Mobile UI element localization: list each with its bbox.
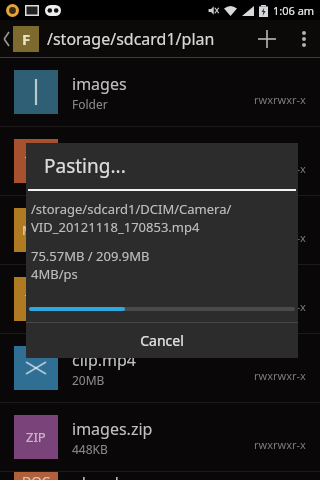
button[interactable]: Add xyxy=(246,20,288,57)
staticText: ZIP xyxy=(26,428,46,446)
staticText: 75.57MB / 209.9MB xyxy=(31,247,150,265)
button[interactable]: images xyxy=(0,58,320,126)
staticText: F xyxy=(22,29,31,49)
staticText: rwxrwxr-x xyxy=(254,92,306,107)
staticText: rwxrwxr-x xyxy=(254,230,306,245)
staticText: images.zip xyxy=(72,418,153,440)
staticText: Folder xyxy=(72,96,108,112)
staticText: song.mp3 xyxy=(72,211,148,233)
staticText: rwxrwxr-x xyxy=(254,437,306,452)
staticText: DOC xyxy=(22,472,50,480)
button[interactable]: Cancel xyxy=(26,323,298,358)
button[interactable]: clip.mp4 xyxy=(0,334,320,402)
button[interactable]: DOC xyxy=(0,472,320,480)
staticText: 448KB xyxy=(72,441,108,457)
button[interactable]: Up xyxy=(0,20,41,57)
staticText: README.txt xyxy=(72,142,161,164)
button[interactable]: More options xyxy=(288,20,320,57)
button[interactable]: MP3 xyxy=(0,196,320,264)
staticText: images xyxy=(72,73,127,95)
staticText: Pasting... xyxy=(44,153,126,179)
staticText: plan.doc xyxy=(72,472,137,480)
staticText: rwxrwxr-x xyxy=(254,368,306,383)
staticText: 20MB xyxy=(72,372,105,388)
staticText: VID_20121118_170853.mp4 xyxy=(31,218,200,236)
button[interactable]: TXT xyxy=(0,265,320,333)
staticText: /storage/sdcard1/plan xyxy=(47,28,215,50)
staticText: TXT xyxy=(25,290,48,308)
button[interactable]: TXT xyxy=(0,127,320,195)
staticText: /storage/sdcard1/DCIM/Camera/ xyxy=(31,200,232,218)
staticText: MP3 xyxy=(22,221,50,239)
staticText: TXT xyxy=(25,152,48,170)
staticText: 2KB xyxy=(72,165,95,181)
staticText: 1:06 am xyxy=(273,3,315,18)
staticText: 4MB/ps xyxy=(31,265,78,283)
staticText: 1KB xyxy=(72,303,95,319)
staticText: rwxrwxr-x xyxy=(254,299,306,314)
staticText: rwxrwxr-x xyxy=(254,161,306,176)
staticText: clip.mp4 xyxy=(72,349,137,371)
button[interactable]: ZIP xyxy=(0,403,320,471)
staticText: Cancel xyxy=(140,331,184,350)
